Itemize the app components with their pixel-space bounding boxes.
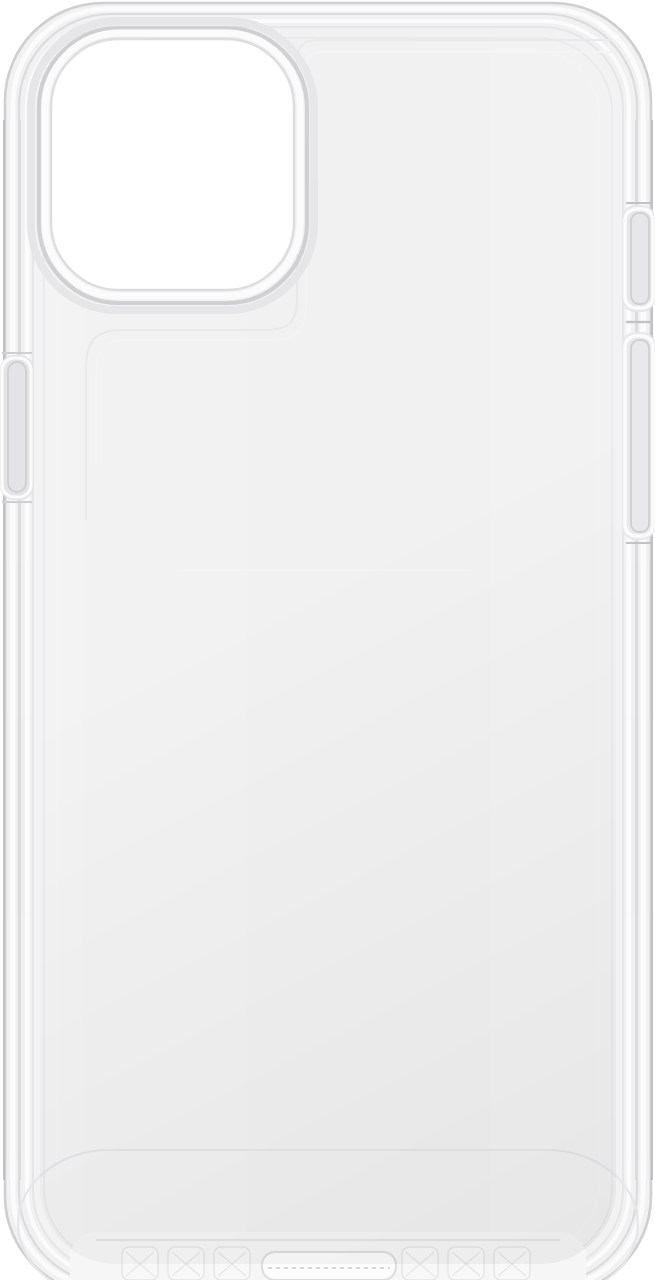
button[interactable]: Clear protective phone case, back view	[0, 0, 655, 1280]
